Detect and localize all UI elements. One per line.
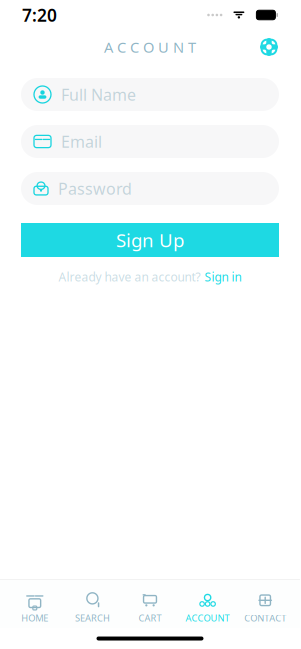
staticText: SEARCH	[75, 612, 110, 624]
button[interactable]: Already have an account?	[50, 265, 249, 289]
staticText: ACCOUNT	[186, 612, 230, 624]
staticText: Sign Up	[116, 228, 184, 252]
staticText: CONTACT	[244, 612, 286, 624]
button[interactable]: ACCOUNT	[179, 589, 236, 628]
staticText: Already have an account?	[58, 269, 200, 285]
button[interactable]: Email	[21, 125, 279, 158]
staticText: Password	[58, 178, 132, 199]
button[interactable]: CART	[121, 589, 179, 628]
button[interactable]: Settings	[254, 32, 284, 62]
staticText: Full Name	[61, 84, 136, 105]
button[interactable]: CONTACT	[236, 589, 294, 628]
staticText: Email	[61, 131, 102, 152]
button[interactable]: Password	[21, 172, 279, 205]
staticText: 7:20	[22, 3, 57, 26]
button[interactable]: Full Name	[21, 78, 279, 111]
button[interactable]: SEARCH	[64, 589, 121, 628]
button[interactable]: HOME	[6, 589, 64, 628]
staticText: A C C O U N T	[104, 37, 196, 57]
button[interactable]: Sign Up	[21, 223, 279, 257]
staticText: CART	[138, 612, 161, 624]
staticText: HOME	[21, 612, 48, 624]
staticText: Sign in	[204, 269, 241, 285]
